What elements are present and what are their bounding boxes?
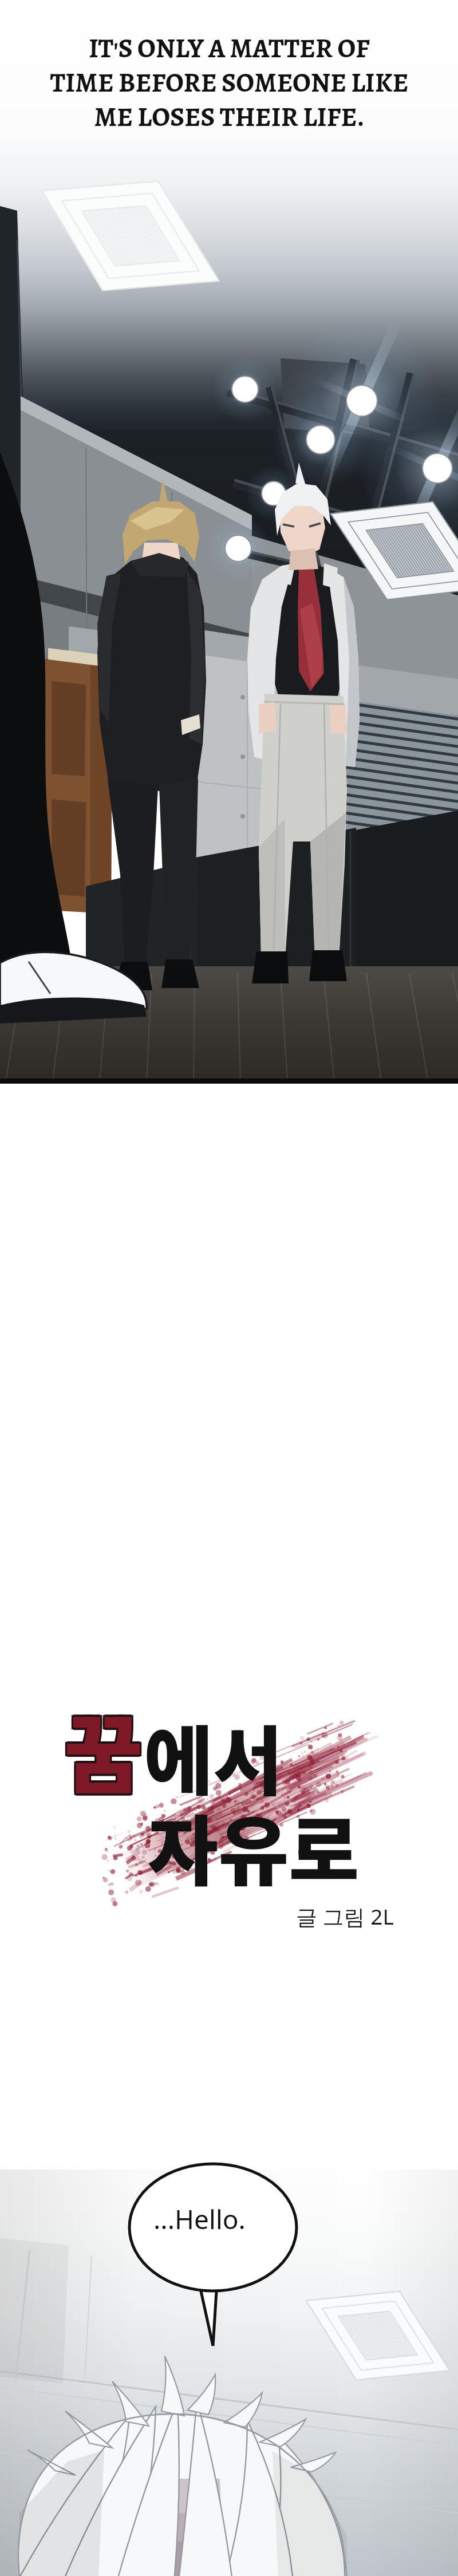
staticText: 꿈 [64,1684,144,1808]
staticText: 꿈 [64,1689,144,1813]
staticText: 자유로 [148,1791,360,1902]
staticText: 꿈 [62,1685,142,1809]
staticText: ...Hello. [153,2201,246,2237]
staticText: 꿈 [64,1686,144,1811]
staticText: 에서 [144,1701,283,1811]
staticText: 꿈 [66,1688,145,1812]
staticText: IT'S ONLY A MATTER OF TIME BEFORE SOMEON… [50,30,409,135]
button[interactable]: Comic title panel [0,1084,458,2170]
staticText: 꿈 [62,1688,142,1812]
button[interactable]: Comic panel 1 [0,0,458,1084]
staticText: 꿈 [66,1685,145,1809]
staticText: 글 그림 2L [296,1902,394,1931]
button[interactable]: Comic panel 3 [0,2170,458,2576]
